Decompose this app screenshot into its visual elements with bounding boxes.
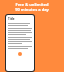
staticText: Free & unlimited — [15, 2, 49, 7]
staticText: Title — [8, 17, 15, 21]
button[interactable] — [18, 52, 22, 56]
staticText: 90 minutes a day — [15, 7, 49, 12]
